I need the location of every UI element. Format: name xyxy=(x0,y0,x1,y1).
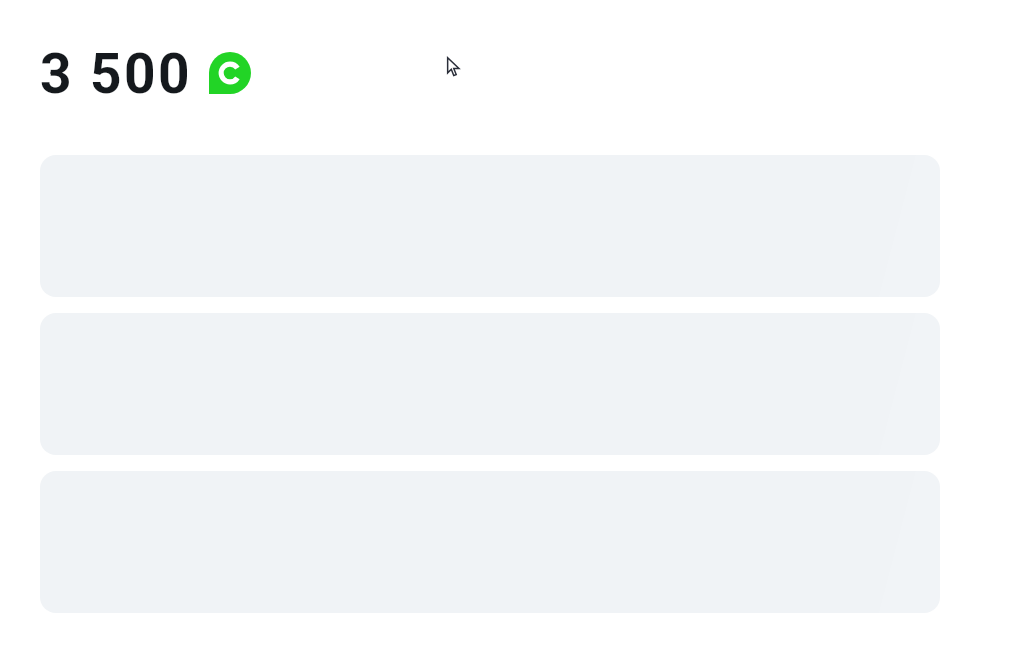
button[interactable]: 3 500 xyxy=(40,42,251,106)
staticText: 3 500 xyxy=(40,42,192,106)
other: Coins balance xyxy=(209,52,251,94)
